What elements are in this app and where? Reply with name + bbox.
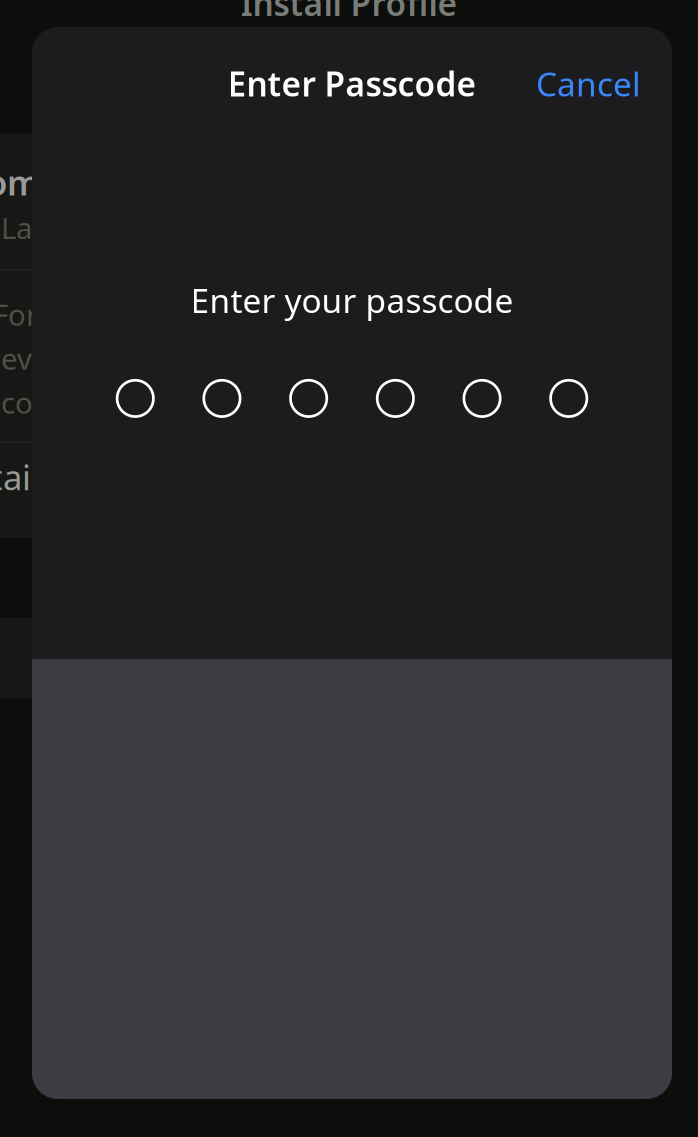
button[interactable]: Cancel <box>524 51 653 116</box>
staticText: Enter Passcode <box>227 61 476 106</box>
staticText: Signed by Formation Labs, Inc. <box>0 295 273 334</box>
staticText: Enter your passcode <box>190 278 513 322</box>
staticText: More Details <box>0 454 57 500</box>
button[interactable]: Remove Downloaded Profile <box>0 618 550 699</box>
staticText: Remove Downloaded Profile <box>150 635 610 681</box>
staticText: Formation Labs <box>0 208 64 247</box>
staticText: Certificate contains a key pair <box>0 383 259 422</box>
staticText: Cancel <box>536 61 641 106</box>
staticText: Contains Device Enrollment, Notification… <box>0 339 424 378</box>
staticText: Install Profile <box>240 0 457 25</box>
button[interactable]: More Details <box>0 443 550 538</box>
staticText: Smart Home Manager <box>0 159 220 205</box>
